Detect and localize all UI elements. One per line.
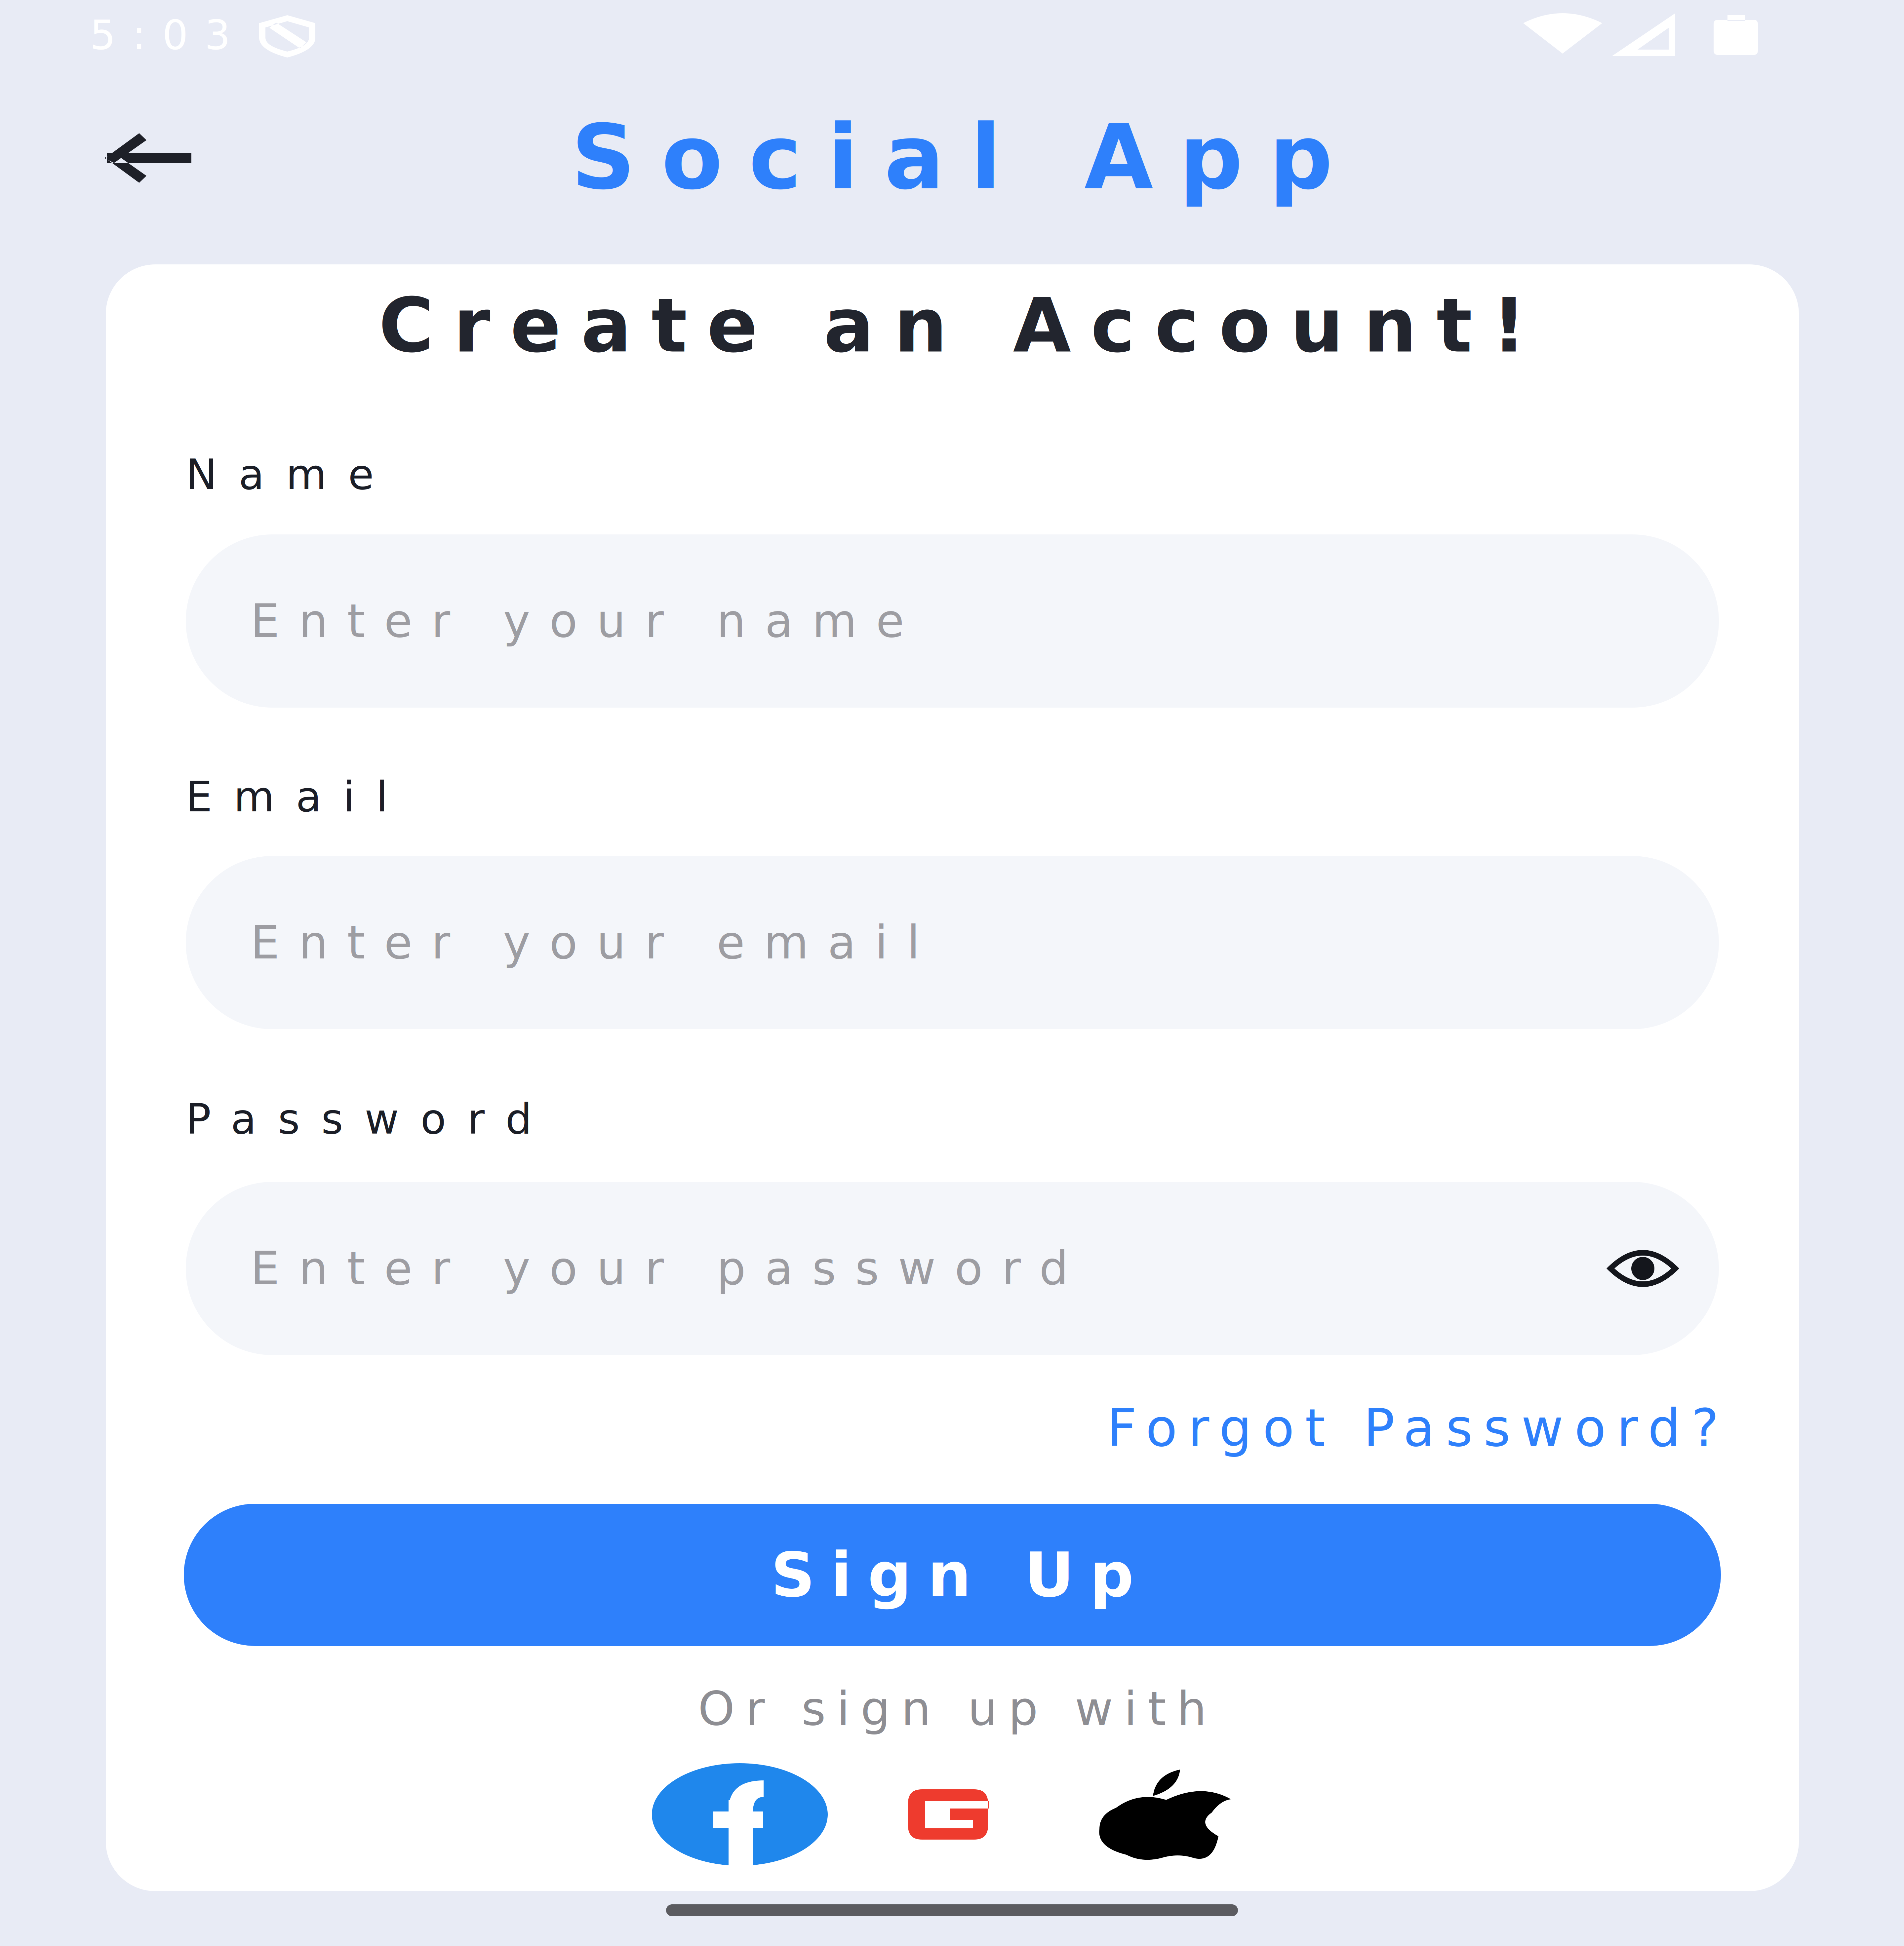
- staticText: Forgot Password?: [1107, 1398, 1719, 1458]
- staticText: Enter your email: [251, 916, 920, 969]
- staticText: Password: [186, 1095, 532, 1143]
- button[interactable]: Sign up with Facebook: [652, 1763, 828, 1866]
- staticText: Enter your name: [251, 594, 904, 648]
- button[interactable]: Sign Up: [184, 1504, 1721, 1646]
- button[interactable]: Back: [99, 115, 198, 201]
- staticText: Or sign up with: [698, 1681, 1207, 1736]
- button[interactable]: Forgot Password?: [1058, 1390, 1719, 1466]
- staticText: Enter your password: [251, 1242, 1068, 1295]
- staticText: Social App: [571, 105, 1333, 209]
- button[interactable]: Sign up with Google: [908, 1789, 988, 1840]
- staticText: Name: [186, 450, 374, 499]
- staticText: 5:03: [90, 11, 230, 59]
- staticText: Email: [186, 772, 388, 821]
- staticText: Sign Up: [771, 1539, 1134, 1610]
- staticText: Create an Account!: [379, 282, 1526, 369]
- button[interactable]: Sign up with Apple: [1098, 1770, 1232, 1859]
